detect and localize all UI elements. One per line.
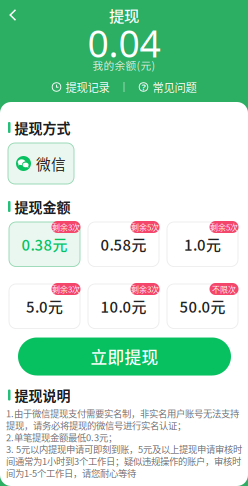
staticText: 0.38元	[21, 233, 67, 255]
staticText: 剩余3次	[131, 283, 159, 295]
button[interactable]: 立即提现	[18, 337, 231, 375]
staticText: 10.0元	[100, 295, 146, 317]
staticText: 我的余额(元)	[92, 57, 155, 73]
staticText: 提现说明	[14, 385, 70, 405]
staticText: 5.0元	[26, 295, 63, 317]
button[interactable]: 10.0元	[88, 284, 159, 328]
staticText: 剩余3次	[52, 221, 80, 233]
button[interactable]: 0.58元	[88, 222, 159, 266]
button[interactable]: 提现记录	[37, 81, 123, 93]
staticText: 提现记录	[65, 79, 109, 95]
button[interactable]: 5.0元	[9, 284, 80, 328]
staticText: 1.0元	[184, 233, 221, 255]
staticText: 提现金额	[14, 196, 70, 217]
staticText: 提现方式	[14, 117, 70, 138]
button[interactable]: Back	[0, 5, 26, 25]
button[interactable]: 微信	[8, 143, 74, 184]
staticText: 0.04	[87, 18, 160, 68]
staticText: ?	[141, 81, 145, 93]
staticText: 0.58元	[100, 233, 146, 255]
button[interactable]: 0.38元	[9, 222, 80, 266]
staticText: 1.由于微信提现支付需要实名制，非实名用户账号无法支持提现，请务必将提现的微信号…	[6, 406, 242, 480]
staticText: 剩余3次	[52, 283, 80, 295]
staticText: 立即提现	[90, 344, 158, 368]
staticText: 剩余5次	[210, 221, 238, 233]
staticText: 不限次	[212, 283, 236, 295]
staticText: 常见问题	[152, 79, 196, 95]
button[interactable]: 1.0元	[167, 222, 238, 266]
button[interactable]: 50.0元	[167, 284, 238, 328]
staticText: 提现	[109, 4, 139, 26]
staticText: 剩余5次	[131, 221, 159, 233]
button[interactable]: ?	[124, 81, 210, 93]
staticText: 50.0元	[179, 295, 225, 317]
staticText: 微信	[36, 153, 66, 174]
